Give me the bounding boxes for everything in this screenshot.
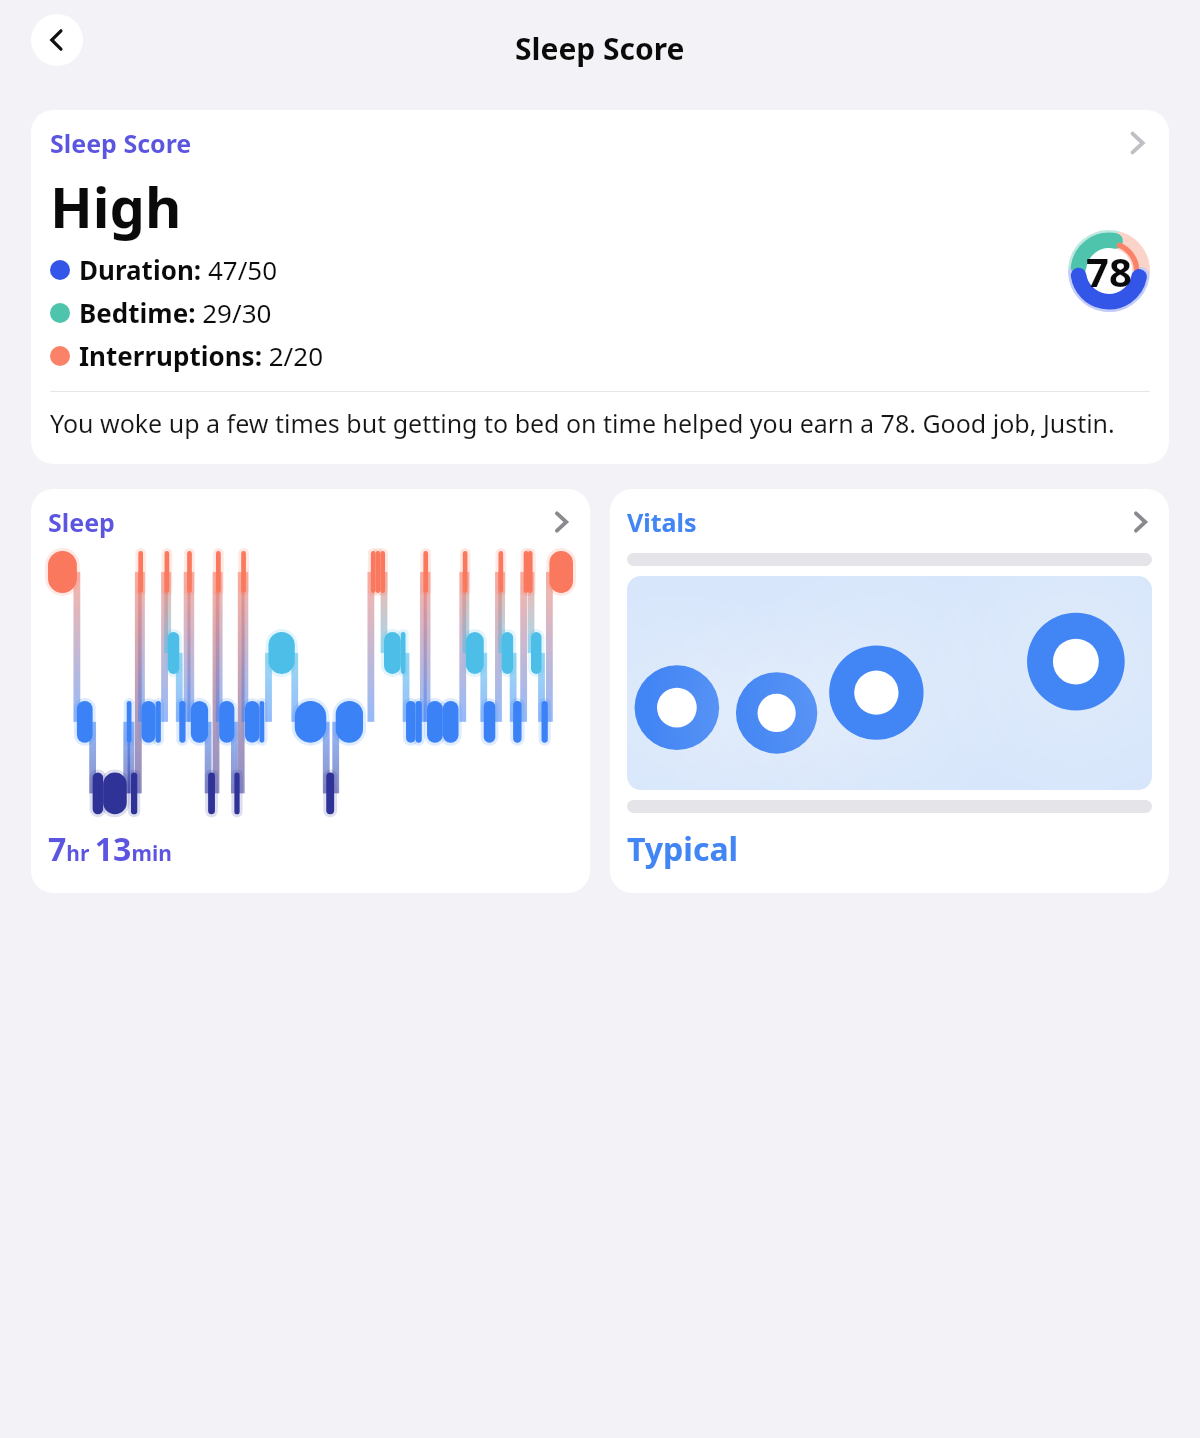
staticText: Sleep Score (50, 126, 192, 160)
button[interactable]: Sleep (31, 489, 590, 893)
staticText: Duration: 47/50 (79, 252, 278, 287)
staticText: You woke up a few times but getting to b… (50, 406, 1115, 440)
staticText: Sleep Score (515, 28, 685, 69)
staticText: Sleep (48, 505, 115, 539)
staticText: 78 (1086, 244, 1132, 298)
button[interactable]: Sleep Score (31, 110, 1169, 464)
staticText: High (50, 168, 182, 244)
staticText: Vitals (627, 505, 697, 539)
staticText: Typical (627, 827, 739, 871)
staticText: 7hr 13min (48, 827, 172, 871)
button[interactable]: Vitals (610, 489, 1169, 893)
staticText: Bedtime: 29/30 (79, 295, 272, 330)
button[interactable]: Back (31, 14, 83, 66)
staticText: Interruptions: 2/20 (79, 338, 324, 373)
